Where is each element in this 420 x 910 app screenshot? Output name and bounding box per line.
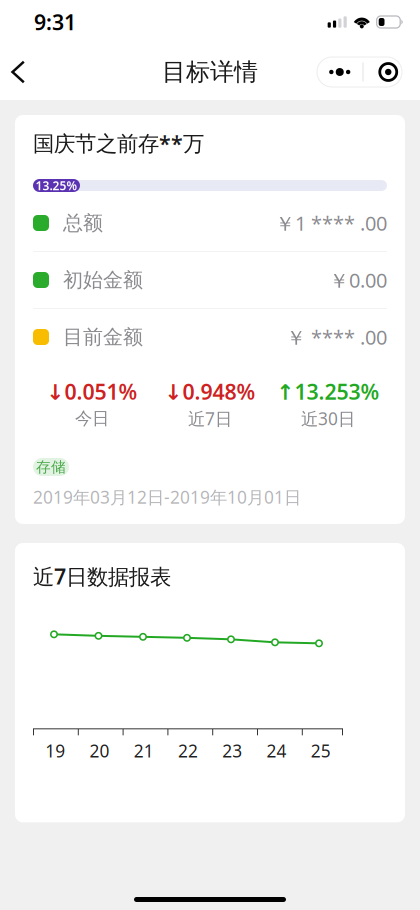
staticText: 20: [89, 739, 109, 762]
staticText: 近30日: [301, 407, 355, 430]
button[interactable]: Back: [0, 48, 55, 96]
staticText: ↑13.253%: [276, 377, 379, 406]
staticText: 国庆节之前存**万: [33, 129, 204, 157]
staticText: 初始金额: [63, 268, 143, 292]
staticText: 22: [178, 739, 198, 762]
staticText: 总额: [63, 211, 103, 235]
staticText: ↓0.051%: [46, 377, 137, 406]
staticText: 13.25%: [35, 177, 77, 193]
staticText: 近7日数据报表: [33, 562, 171, 590]
staticText: 19: [45, 739, 65, 762]
staticText: ￥0.00: [329, 267, 387, 293]
staticText: ￥ **** .00: [286, 324, 387, 350]
staticText: 2019年03月12日-2019年10月01日: [33, 485, 301, 508]
staticText: 近7日: [188, 407, 232, 430]
staticText: ↓0.948%: [164, 377, 255, 406]
staticText: 25: [311, 739, 331, 762]
staticText: 23: [222, 739, 242, 762]
staticText: 今日: [75, 408, 109, 429]
staticText: 21: [134, 739, 154, 762]
staticText: 目标详情: [162, 57, 258, 87]
staticText: 目前金额: [63, 325, 143, 349]
button[interactable]: More: [317, 57, 402, 87]
staticText: ￥1 **** .00: [275, 210, 387, 236]
staticText: 24: [267, 739, 287, 762]
staticText: 9:31: [34, 8, 76, 36]
staticText: 存储: [36, 458, 66, 476]
